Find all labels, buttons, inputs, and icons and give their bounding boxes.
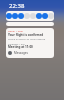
staticText: Your flight is confirmed bbox=[8, 33, 44, 37]
staticText: Meeting at 11:00 bbox=[8, 45, 33, 49]
staticText: Sat, Dec 10 bbox=[9, 10, 22, 13]
button[interactable]: Quick setting bbox=[18, 13, 24, 19]
button[interactable]: Quick setting bbox=[30, 13, 36, 19]
button[interactable]: Quick setting bbox=[24, 13, 30, 19]
button[interactable]: Quick setting bbox=[12, 13, 18, 19]
button[interactable]: Quick setting bbox=[6, 13, 12, 19]
button[interactable]: Brightness bbox=[6, 22, 54, 26]
button[interactable]: Gmail • now bbox=[6, 28, 54, 41]
button[interactable]: Messages bbox=[6, 50, 54, 56]
staticText: Messages bbox=[14, 51, 28, 55]
staticText: Check in opens 24 hours before bbox=[8, 37, 46, 40]
staticText: Gmail • now bbox=[8, 29, 23, 32]
button[interactable]: Quick setting bbox=[42, 13, 48, 19]
button[interactable]: Quick setting bbox=[36, 13, 42, 19]
staticText: 22:38 bbox=[9, 2, 25, 10]
staticText: Calendar • 5m bbox=[8, 42, 25, 45]
button[interactable]: Calendar • 5m bbox=[6, 41, 54, 50]
button[interactable]: Quick setting bbox=[48, 13, 54, 19]
